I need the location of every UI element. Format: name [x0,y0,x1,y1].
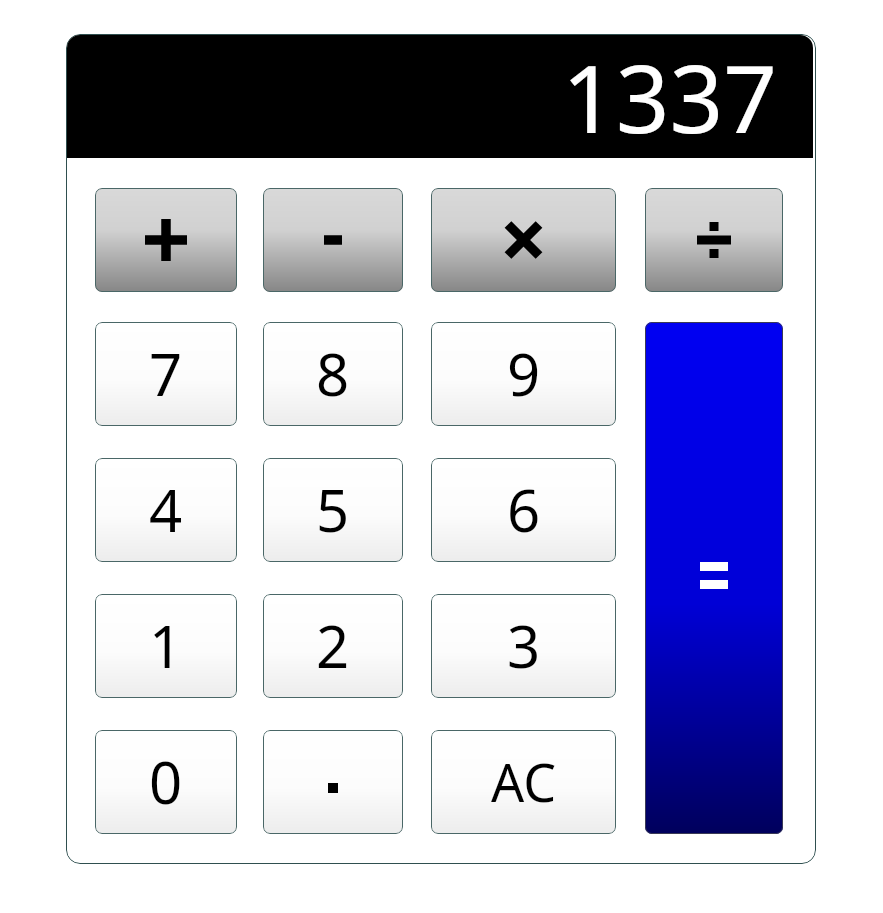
button[interactable]: 1337 [67,35,813,158]
staticText: 0 [149,742,183,821]
staticText: 3 [507,606,541,685]
button[interactable]: Multiply [431,188,616,292]
button[interactable]: AC [431,730,616,834]
staticText: 8 [316,334,350,413]
staticText: 5 [316,470,350,549]
staticText: 6 [507,470,541,549]
staticText: 1337 [561,35,777,156]
staticText: 2 [316,606,350,685]
button[interactable]: 7 [95,322,237,426]
staticText: 1 [149,606,183,685]
button[interactable]: Equals [645,322,783,834]
button[interactable]: Divide [645,188,783,292]
button[interactable]: 3 [431,594,616,698]
button[interactable]: 5 [263,458,403,562]
button[interactable]: 8 [263,322,403,426]
staticText: AC [491,746,557,817]
staticText: 9 [507,334,541,413]
button[interactable]: Plus [95,188,237,292]
button[interactable]: Minus [263,188,403,292]
button[interactable]: 1 [95,594,237,698]
button[interactable]: 0 [95,730,237,834]
staticText: 7 [149,334,183,413]
button[interactable]: 2 [263,594,403,698]
button[interactable]: 6 [431,458,616,562]
staticText: 4 [149,470,183,549]
button[interactable]: 9 [431,322,616,426]
button[interactable]: 4 [95,458,237,562]
button[interactable]: . [263,730,403,834]
